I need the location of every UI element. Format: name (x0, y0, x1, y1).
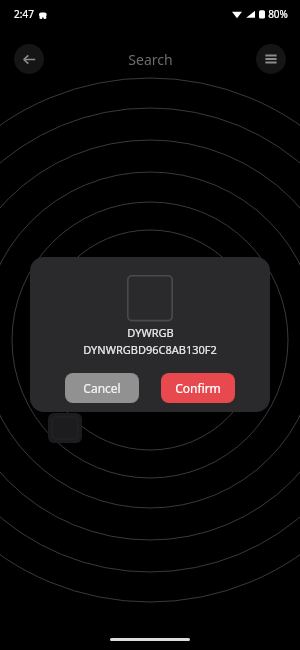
button[interactable]: Menu (256, 44, 286, 74)
staticText: Cancel (83, 380, 121, 396)
button[interactable]: Cancel (65, 373, 139, 403)
staticText: Search (128, 50, 173, 69)
staticText: 80% (268, 7, 288, 21)
button[interactable]: Back (14, 44, 44, 74)
button[interactable]: Confirm (161, 373, 235, 403)
staticText: DYNWRGBD96C8AB130F2 (83, 342, 217, 357)
staticText: 2:47 (14, 7, 34, 21)
staticText: DYWRGB (127, 325, 174, 340)
staticText: Confirm (175, 380, 221, 396)
